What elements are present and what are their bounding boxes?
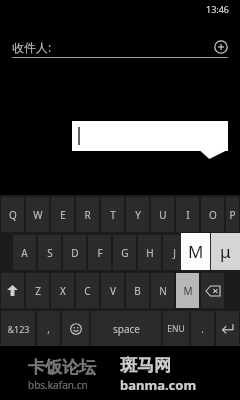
button[interactable]: E (51, 197, 74, 232)
button[interactable]: Y (126, 197, 149, 232)
button[interactable]: B (126, 273, 149, 308)
staticText: E (60, 208, 66, 222)
staticText: X (60, 284, 66, 298)
staticText: B (134, 284, 141, 298)
button[interactable]: Q (1, 197, 24, 232)
button[interactable]: M (176, 273, 199, 308)
staticText: &123 (7, 323, 30, 335)
button[interactable]: μ (211, 233, 240, 270)
staticText: G (121, 246, 129, 260)
staticText: , (47, 322, 50, 336)
staticText: S (47, 246, 53, 260)
staticText: J (173, 246, 176, 260)
staticText: Y (135, 208, 141, 222)
button[interactable]: . (191, 311, 214, 346)
button[interactable]: U (151, 197, 174, 232)
button[interactable] (1, 273, 24, 308)
button[interactable]: &123 (1, 311, 35, 346)
staticText: A (21, 246, 28, 260)
button[interactable]: G (113, 235, 136, 270)
button[interactable] (201, 273, 224, 308)
button[interactable]: I (176, 197, 199, 232)
staticText: C (84, 284, 91, 298)
staticText: R (84, 208, 91, 222)
button[interactable]: Z (26, 273, 49, 308)
button[interactable]: M (181, 233, 210, 270)
staticText: U (159, 208, 167, 222)
button[interactable]: D (63, 235, 86, 270)
staticText: W (33, 208, 43, 222)
button[interactable]: L (213, 235, 236, 270)
button[interactable] (62, 311, 89, 346)
staticText: P (229, 208, 236, 222)
button[interactable]: S (38, 235, 61, 270)
staticText: bbs.kafan.cn (28, 378, 88, 392)
button[interactable]: A (13, 235, 36, 270)
staticText: N (159, 284, 167, 298)
button[interactable]: O (201, 197, 224, 232)
staticText: D (71, 246, 79, 260)
staticText: Z (35, 284, 41, 298)
button[interactable]: K (188, 235, 211, 270)
button[interactable]: space (91, 311, 161, 346)
staticText: 斑马网 (120, 355, 171, 376)
button[interactable]: R (76, 197, 99, 232)
staticText: L (222, 246, 228, 260)
button[interactable]: J (163, 235, 186, 270)
staticText: Q (9, 208, 17, 222)
staticText: . (201, 322, 204, 336)
staticText: H (146, 246, 154, 260)
button[interactable]: X (51, 273, 74, 308)
button[interactable]: W (26, 197, 49, 232)
button[interactable]: H (138, 235, 161, 270)
staticText: K (196, 246, 203, 260)
staticText: I (186, 208, 190, 222)
staticText: 13:46 (206, 3, 230, 15)
button[interactable]: , (37, 311, 60, 346)
staticText: space (113, 322, 140, 336)
staticText: V (110, 284, 116, 298)
staticText: ENU (167, 323, 185, 335)
staticText: banma.com (120, 376, 197, 394)
staticText: M (183, 284, 193, 298)
staticText: T (110, 208, 116, 222)
button[interactable]: P (226, 197, 239, 232)
staticText: 收件人: (12, 39, 52, 55)
button[interactable]: F (88, 235, 111, 270)
button[interactable]: Add recipient (212, 38, 230, 56)
button[interactable]: V (101, 273, 124, 308)
button[interactable]: ENU (163, 311, 189, 346)
staticText: O (209, 208, 217, 222)
staticText: μ (220, 240, 231, 263)
button[interactable] (216, 311, 239, 346)
button[interactable]: C (76, 273, 99, 308)
staticText: F (97, 246, 103, 260)
button[interactable]: T (101, 197, 124, 232)
button[interactable]: N (151, 273, 174, 308)
staticText: 卡饭论坛 (28, 357, 96, 378)
staticText: M (188, 240, 204, 263)
